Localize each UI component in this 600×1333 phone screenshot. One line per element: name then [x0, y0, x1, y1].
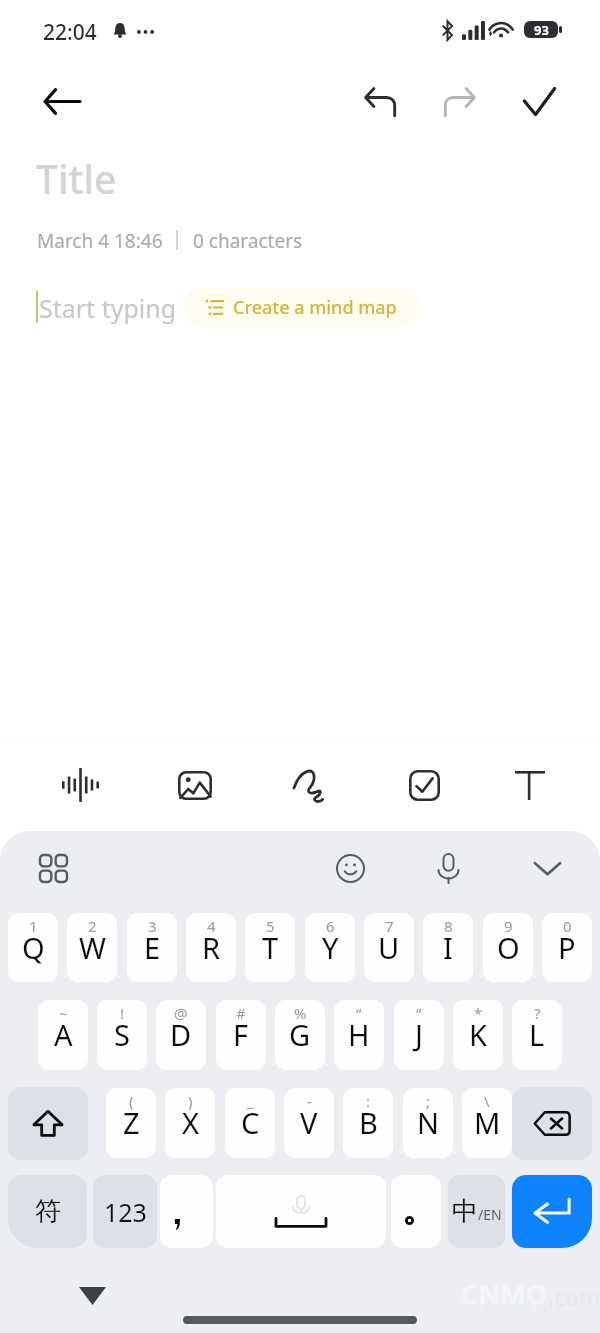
staticText: 7 [385, 916, 394, 936]
button[interactable]: 符 [8, 1175, 87, 1248]
button[interactable]: “ [334, 1000, 384, 1070]
staticText: ( [129, 1091, 134, 1111]
staticText: W [79, 928, 106, 967]
staticText: 9 [504, 916, 513, 936]
button[interactable]: Checklist [396, 757, 452, 813]
staticText: 6 [326, 916, 335, 936]
staticText: @ [174, 1003, 188, 1023]
button[interactable]: ~ [38, 1000, 88, 1070]
button[interactable]: 1 [8, 913, 58, 982]
button[interactable]: ) [165, 1088, 215, 1158]
staticText: I [443, 928, 453, 967]
staticText: E [144, 928, 161, 967]
button[interactable]: Undo [354, 75, 406, 127]
button[interactable]: Emoji [327, 845, 373, 891]
staticText: S [114, 1015, 130, 1054]
staticText: O [497, 928, 520, 967]
staticText: 93 [534, 21, 549, 38]
button[interactable]: # [216, 1000, 266, 1070]
button[interactable]: Audio [52, 757, 108, 813]
button[interactable]: ( [106, 1088, 156, 1158]
button[interactable]: 3 [127, 913, 177, 982]
staticText: G [289, 1015, 311, 1054]
staticText: _ [247, 1091, 254, 1111]
button[interactable]: * [453, 1000, 503, 1070]
button[interactable]: 中 [448, 1175, 505, 1248]
button[interactable]: Back [36, 75, 88, 127]
button[interactable]: ! [97, 1000, 147, 1070]
staticText: % [294, 1003, 307, 1023]
button[interactable]: Comma [160, 1175, 213, 1248]
staticText: CNMO [461, 1275, 548, 1312]
button[interactable]: 5 [245, 913, 295, 982]
staticText: # [236, 1003, 246, 1023]
staticText: B [359, 1103, 378, 1142]
button[interactable]: @ [156, 1000, 206, 1070]
staticText: Y [322, 928, 339, 967]
button[interactable]: ? [512, 1000, 562, 1070]
staticText: ; [426, 1091, 431, 1111]
button[interactable]: Enter [512, 1175, 592, 1248]
staticText: X [182, 1103, 199, 1142]
staticText: A [54, 1015, 73, 1054]
button[interactable]: 4 [186, 913, 236, 982]
button[interactable]: Voice input [425, 845, 471, 891]
staticText: /EN [478, 1205, 502, 1224]
staticText: * [474, 1003, 483, 1023]
staticText: U [378, 928, 400, 967]
staticText: C [241, 1103, 260, 1142]
button[interactable]: Save [513, 75, 565, 127]
staticText: M [474, 1103, 501, 1142]
button[interactable]: Create a mind map [183, 288, 420, 327]
staticText: ? [534, 1003, 541, 1023]
button[interactable]: Keyboard menu [30, 845, 76, 891]
button[interactable]: Collapse [66, 1269, 118, 1321]
staticText: ~ [59, 1003, 68, 1023]
button[interactable]: Redo [433, 75, 485, 127]
button[interactable]: Space [216, 1175, 386, 1248]
button[interactable]: 0 [542, 913, 592, 982]
button[interactable]: Backspace [512, 1087, 592, 1160]
staticText: H [348, 1015, 370, 1054]
button[interactable]: 7 [364, 913, 414, 982]
staticText: 3 [148, 916, 157, 936]
staticText: 0 [563, 916, 572, 936]
staticText: R [202, 928, 221, 967]
staticText: K [469, 1015, 487, 1054]
staticText: - [307, 1091, 312, 1111]
button[interactable]: 2 [67, 913, 117, 982]
staticText: “ [356, 1003, 362, 1023]
staticText: Z [123, 1103, 140, 1142]
button[interactable]: \ [462, 1088, 512, 1158]
button[interactable]: % [275, 1000, 325, 1070]
staticText: 22:04 [43, 18, 97, 47]
staticText: March 4 18:46 [37, 228, 163, 254]
button[interactable]: 123 [93, 1175, 157, 1248]
staticText: Start typing [39, 291, 177, 325]
button[interactable]: 8 [423, 913, 473, 982]
button[interactable]: _ [225, 1088, 275, 1158]
staticText: 123 [104, 1195, 147, 1229]
staticText: 符 [35, 1195, 61, 1228]
button[interactable]: Image [167, 757, 223, 813]
button[interactable]: Period [391, 1175, 441, 1248]
staticText: F [233, 1015, 249, 1054]
button[interactable]: Draw [280, 757, 336, 813]
button[interactable]: “ [394, 1000, 444, 1070]
staticText: D [170, 1015, 192, 1054]
button[interactable]: - [284, 1088, 334, 1158]
staticText: 8 [444, 916, 453, 936]
button[interactable]: 6 [305, 913, 355, 982]
staticText: \ [484, 1091, 490, 1111]
staticText: N [417, 1103, 440, 1142]
button[interactable]: ; [403, 1088, 453, 1158]
button[interactable]: Hide keyboard [524, 845, 570, 891]
staticText: Create a mind map [233, 295, 397, 320]
button[interactable]: Shift [8, 1087, 88, 1160]
button[interactable]: : [343, 1088, 393, 1158]
button[interactable]: Text [502, 757, 558, 813]
staticText: : [366, 1091, 371, 1111]
button[interactable]: 9 [483, 913, 533, 982]
